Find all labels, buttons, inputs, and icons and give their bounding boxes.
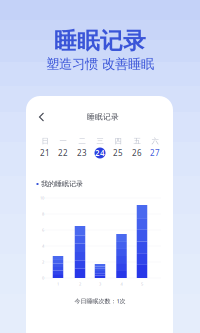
staticText: 5: [141, 281, 143, 287]
staticText: 二: [78, 136, 85, 146]
button[interactable]: 日: [36, 134, 54, 160]
staticText: 睡眠记录: [87, 112, 119, 122]
staticText: 今日睡眠次数：1次: [74, 297, 125, 305]
staticText: 6: [42, 227, 44, 233]
staticText: 25: [113, 148, 123, 158]
staticText: 26: [132, 148, 142, 158]
staticText: 一: [59, 136, 66, 146]
staticText: 日: [41, 136, 48, 146]
button[interactable]: Back: [32, 106, 51, 128]
staticText: 六: [151, 136, 158, 146]
button[interactable]: 二: [73, 134, 91, 160]
button[interactable]: 五: [128, 134, 146, 160]
staticText: 五: [133, 136, 140, 146]
staticText: 23: [77, 148, 87, 158]
staticText: 22: [58, 148, 68, 158]
staticText: 我的睡眠记录: [41, 179, 83, 188]
staticText: 4: [42, 243, 44, 249]
staticText: 三: [96, 136, 103, 146]
staticText: 四: [114, 136, 121, 146]
button[interactable]: 三: [91, 134, 109, 160]
staticText: 4: [120, 281, 122, 287]
button[interactable]: 四: [109, 134, 127, 160]
staticText: 24: [95, 148, 105, 158]
staticText: 2: [79, 281, 81, 287]
staticText: 1: [57, 281, 59, 287]
button[interactable]: 一: [54, 134, 72, 160]
staticText: 2: [42, 259, 44, 265]
staticText: 8: [42, 211, 44, 217]
staticText: 3: [99, 281, 101, 287]
button[interactable]: 六: [146, 134, 164, 160]
staticText: 睡眠记录: [54, 27, 146, 55]
staticText: 10: [40, 195, 44, 201]
staticText: 0: [42, 275, 44, 281]
staticText: 27: [150, 148, 160, 158]
staticText: 21: [40, 148, 50, 158]
staticText: 塑造习惯 改善睡眠: [46, 56, 154, 72]
